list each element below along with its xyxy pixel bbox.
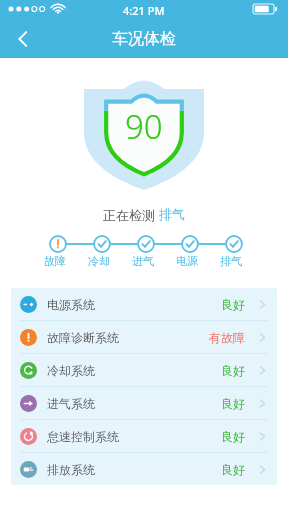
staticText: 电源系统 bbox=[47, 297, 95, 312]
button[interactable]: 故障诊断系统 bbox=[11, 321, 277, 353]
staticText: 良好 bbox=[221, 462, 245, 477]
staticText: 4:21 PM bbox=[123, 3, 165, 18]
staticText: 有故障 bbox=[209, 330, 245, 345]
staticText: 良好 bbox=[221, 429, 245, 444]
staticText: 良好 bbox=[221, 363, 245, 378]
staticText: 故障 bbox=[44, 254, 66, 268]
staticText: 排气 bbox=[220, 254, 242, 268]
staticText: 排放系统 bbox=[47, 462, 95, 477]
button[interactable]: 怠速控制系统 bbox=[11, 420, 277, 452]
staticText: 进气系统 bbox=[47, 396, 95, 411]
staticText: 电源 bbox=[176, 254, 198, 268]
staticText: 90 bbox=[125, 104, 163, 149]
staticText: 进气 bbox=[132, 254, 154, 268]
staticText: 冷却 bbox=[88, 254, 110, 268]
button[interactable]: 电源系统 bbox=[11, 288, 277, 320]
button[interactable]: 排放系统 bbox=[11, 453, 277, 485]
button[interactable]: 进气系统 bbox=[11, 387, 277, 419]
staticText: 排气 bbox=[159, 206, 185, 222]
staticText: 良好 bbox=[221, 396, 245, 411]
staticText: 车况体检 bbox=[112, 29, 176, 49]
staticText: 良好 bbox=[221, 297, 245, 312]
staticText: 怠速控制系统 bbox=[47, 429, 119, 444]
button[interactable]: 冷却系统 bbox=[11, 354, 277, 386]
staticText: 故障诊断系统 bbox=[47, 330, 119, 345]
staticText: 正在检测 bbox=[103, 206, 159, 224]
button[interactable]: Back bbox=[0, 20, 46, 58]
staticText: 冷却系统 bbox=[47, 363, 95, 378]
